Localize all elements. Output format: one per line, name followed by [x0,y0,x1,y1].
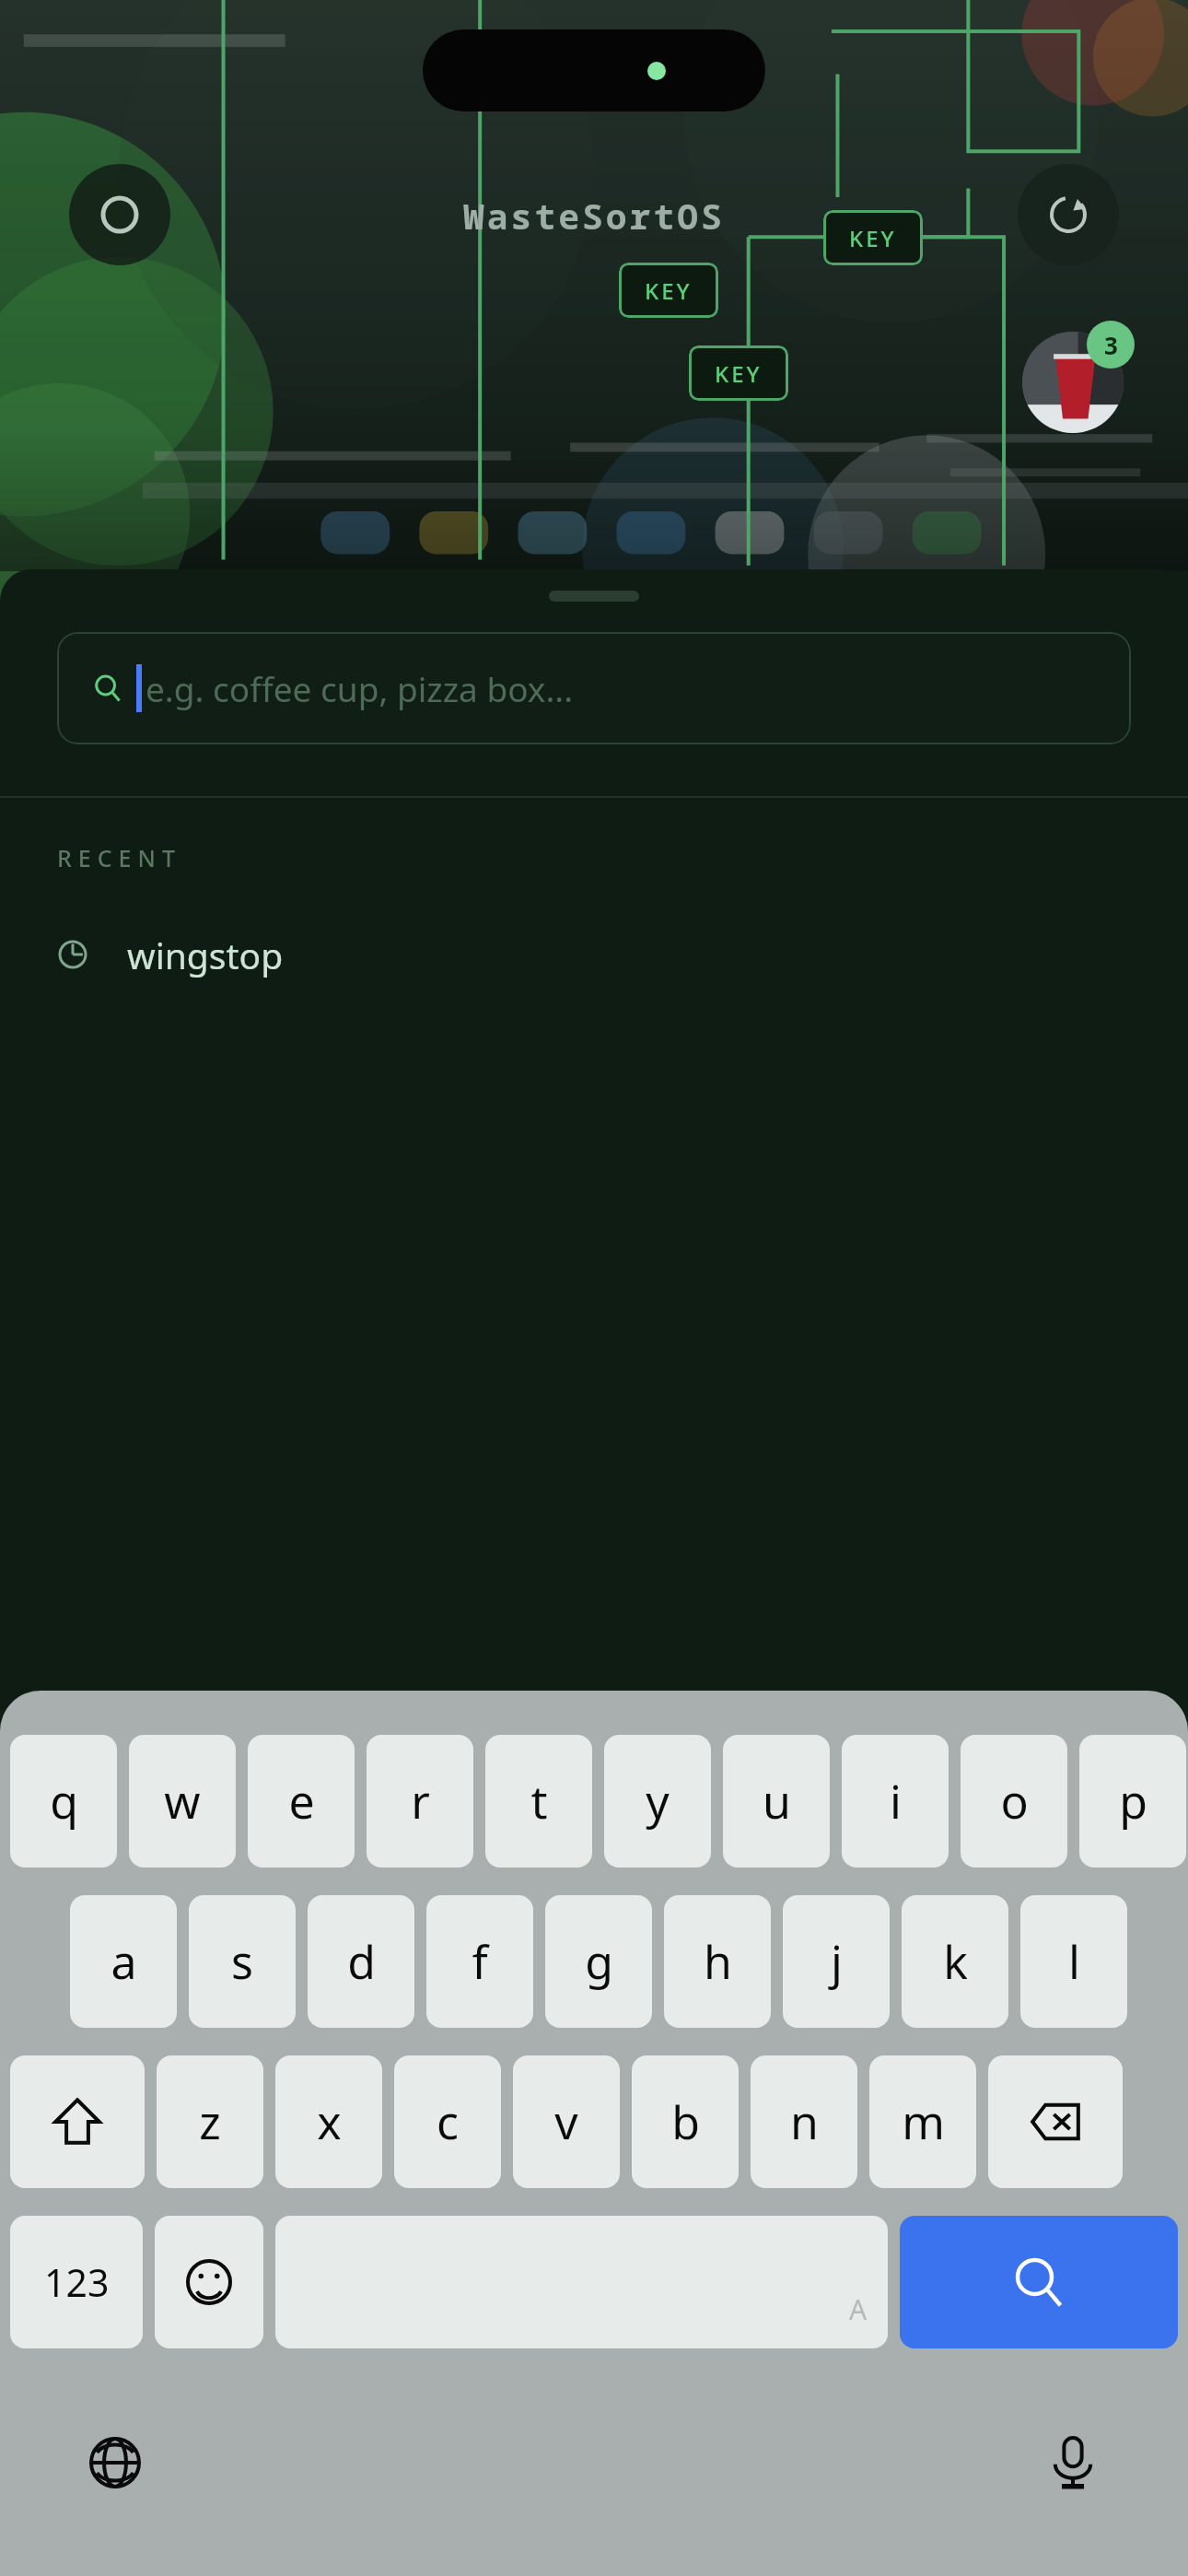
staticText: f [472,1930,488,1993]
button[interactable]: Search [900,2216,1178,2348]
button[interactable]: o [961,1735,1067,1868]
staticText: g [585,1930,613,1993]
button[interactable]: t [485,1735,592,1868]
button[interactable]: Emoji [155,2216,263,2348]
staticText: WasteSortOS [463,192,725,240]
button[interactable]: A [275,2216,888,2348]
button[interactable]: Capture [69,164,170,265]
staticText: s [231,1930,253,1993]
staticText: r [411,1770,430,1832]
button[interactable]: p [1079,1735,1186,1868]
button[interactable]: n [751,2055,857,2188]
staticText: i [890,1770,902,1832]
button[interactable]: u [723,1735,830,1868]
staticText: e.g. coffee cup, pizza box... [146,665,574,711]
button[interactable]: k [902,1895,1008,2028]
button[interactable]: b [632,2055,739,2188]
button[interactable]: g [545,1895,652,2028]
staticText: u [763,1770,791,1832]
staticText: z [199,2090,221,2153]
button[interactable]: e [248,1735,355,1868]
staticText: d [347,1930,376,1993]
button[interactable]: d [308,1895,414,2028]
staticText: h [704,1930,732,1993]
button[interactable]: KEY [823,210,923,265]
button[interactable]: Backspace [988,2055,1123,2188]
staticText: w [164,1770,201,1832]
staticText: 3 [1104,329,1118,361]
button[interactable]: e.g. coffee cup, pizza box... [57,632,1131,744]
button[interactable]: c [394,2055,501,2188]
button[interactable]: Change keyboard [0,2407,230,2518]
staticText: KEY [849,223,897,253]
button[interactable]: l [1020,1895,1127,2028]
button[interactable]: m [869,2055,976,2188]
staticText: v [554,2090,578,2153]
button[interactable]: x [275,2055,382,2188]
staticText: KEY [715,358,763,389]
staticText: j [831,1930,843,1993]
button[interactable]: v [513,2055,620,2188]
staticText: y [646,1770,670,1832]
staticText: e [288,1770,315,1832]
button[interactable]: Voice input [958,2407,1188,2518]
staticText: A [849,2290,868,2328]
staticText: b [671,2090,700,2153]
button[interactable]: a [70,1895,177,2028]
button[interactable]: i [842,1735,949,1868]
button[interactable]: y [604,1735,711,1868]
staticText: c [437,2090,459,2153]
button[interactable]: wingstop [0,907,1188,1002]
button[interactable]: KEY [619,263,718,318]
button[interactable]: Shift [10,2055,145,2188]
button[interactable]: j [783,1895,890,2028]
button[interactable]: f [426,1895,533,2028]
button[interactable]: r [367,1735,473,1868]
staticText: p [1119,1770,1147,1832]
button[interactable]: Switch camera [1018,164,1119,265]
staticText: q [50,1770,78,1832]
button[interactable]: KEY [689,345,788,401]
staticText: a [111,1930,137,1993]
staticText: m [902,2090,945,2153]
staticText: t [530,1770,548,1832]
button[interactable]: z [157,2055,263,2188]
staticText: k [943,1930,968,1993]
button[interactable]: 123 [10,2216,143,2348]
staticText: wingstop [127,931,284,979]
staticText: x [317,2090,342,2153]
button[interactable]: Recent scans [1022,321,1135,433]
button[interactable]: q [10,1735,117,1868]
staticText: o [1000,1770,1029,1832]
staticText: KEY [645,275,693,306]
button[interactable]: s [189,1895,296,2028]
button[interactable]: h [664,1895,771,2028]
staticText: RECENT [57,842,181,873]
staticText: 123 [44,2256,110,2308]
staticText: n [790,2090,819,2153]
button[interactable]: w [129,1735,236,1868]
staticText: l [1068,1930,1080,1993]
